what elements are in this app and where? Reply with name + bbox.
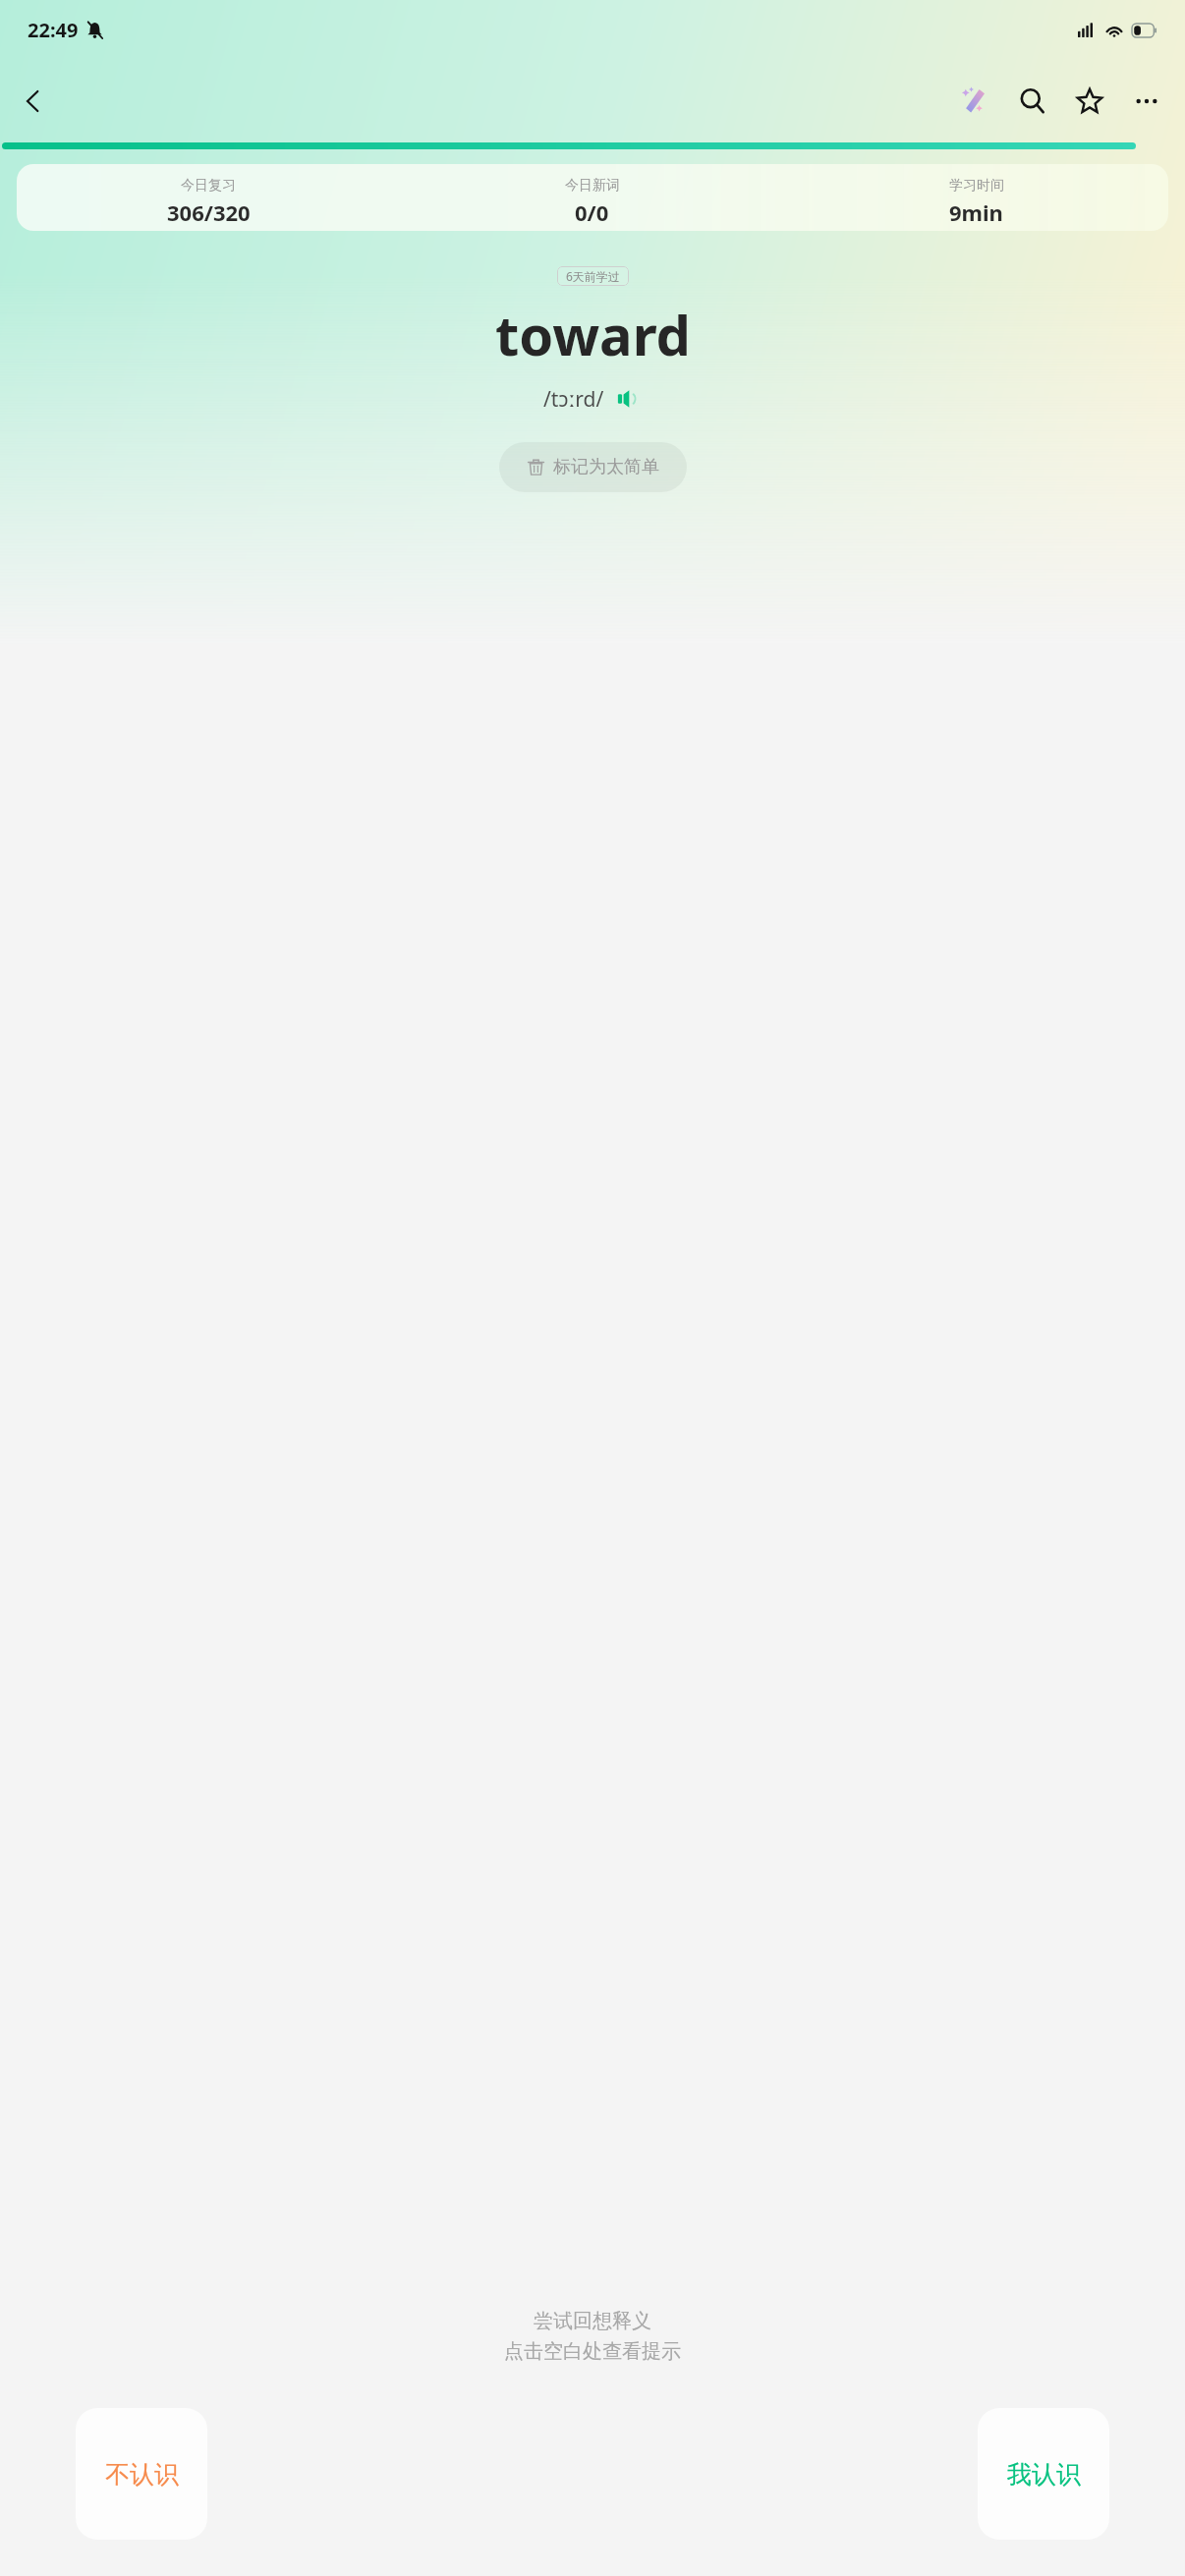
staticText: /tɔːrd/ — [543, 385, 604, 414]
button[interactable]: 标记为太简单 — [499, 442, 687, 492]
button[interactable]: Search — [1004, 73, 1061, 130]
staticText: 9min — [949, 197, 1003, 227]
button[interactable]: Back — [6, 74, 61, 129]
staticText: 6天前学过 — [566, 268, 620, 284]
staticText: toward — [495, 297, 691, 371]
button[interactable]: 今日复习 — [17, 164, 1168, 231]
staticText: 0/0 — [575, 197, 609, 227]
staticText: 今日复习 — [181, 177, 236, 195]
staticText: 22:49 — [28, 17, 79, 43]
button[interactable]: 不认识 — [76, 2408, 207, 2540]
button[interactable]: More options — [1118, 73, 1175, 130]
button[interactable]: Favorite — [1061, 73, 1118, 130]
button[interactable]: AI assistant — [947, 73, 1004, 130]
staticText: 学习时间 — [949, 177, 1004, 195]
staticText: 标记为太简单 — [553, 456, 659, 478]
staticText: 不认识 — [105, 2459, 179, 2490]
button[interactable]: 我认识 — [978, 2408, 1109, 2540]
staticText: 我认识 — [1007, 2459, 1081, 2490]
staticText: 尝试回想释义 点击空白处查看提示 — [0, 2309, 1185, 2364]
staticText: 今日新词 — [565, 177, 620, 195]
button[interactable]: Play pronunciation — [613, 384, 643, 414]
staticText: 306/320 — [167, 197, 251, 227]
